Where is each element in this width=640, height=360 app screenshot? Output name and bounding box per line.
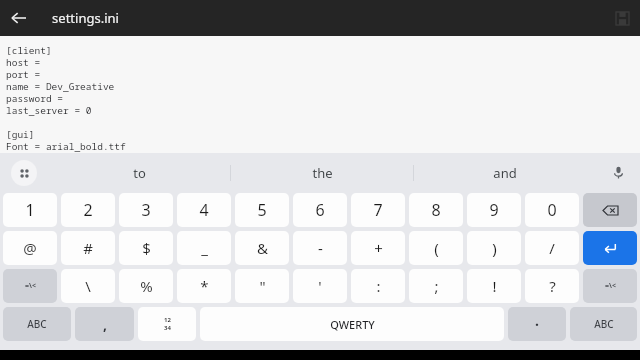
staticText: 6	[315, 199, 325, 221]
button[interactable]: 3	[119, 193, 173, 227]
button[interactable]: 8	[409, 193, 463, 227]
button[interactable]: QWERTY	[200, 307, 504, 341]
button[interactable]: "	[235, 269, 289, 303]
button[interactable]: ABC	[3, 307, 71, 341]
staticText: name = Dev_Greative	[6, 80, 115, 92]
button[interactable]: -	[293, 231, 347, 265]
staticText: 8	[431, 199, 441, 221]
button[interactable]: 5	[235, 193, 289, 227]
staticText: 1	[25, 199, 35, 221]
staticText: =\<	[25, 281, 36, 291]
button[interactable]: Save	[604, 0, 640, 36]
staticText: [client]	[6, 44, 52, 56]
staticText: %	[140, 276, 153, 296]
staticText: '	[318, 276, 322, 296]
staticText: (	[434, 238, 439, 258]
staticText: 12	[164, 316, 171, 324]
staticText: ;	[434, 276, 439, 296]
staticText: password =	[6, 92, 64, 104]
staticText: $	[142, 238, 151, 258]
staticText: ABC	[594, 317, 614, 331]
staticText: -	[318, 238, 323, 258]
staticText: &	[257, 238, 268, 258]
button[interactable]: @	[3, 231, 57, 265]
staticText: ,	[103, 315, 107, 334]
button[interactable]: ?	[525, 269, 579, 303]
button[interactable]: 9	[467, 193, 521, 227]
staticText: "	[259, 276, 266, 296]
button[interactable]: (	[409, 231, 463, 265]
staticText: 2	[83, 199, 93, 221]
staticText: \	[85, 276, 91, 296]
staticText: QWERTY	[330, 317, 375, 332]
staticText: :	[376, 276, 381, 296]
staticText: the	[312, 164, 333, 182]
button[interactable]: +	[351, 231, 405, 265]
button[interactable]: &	[235, 231, 289, 265]
button[interactable]: _	[177, 231, 231, 265]
button[interactable]: Numeric keyboard	[138, 307, 196, 341]
staticText: 34	[164, 324, 171, 332]
button[interactable]: the	[231, 153, 413, 192]
button[interactable]: ABC	[570, 307, 637, 341]
button[interactable]: )	[467, 231, 521, 265]
button[interactable]: =\<	[583, 269, 637, 303]
staticText: ·	[535, 315, 539, 334]
staticText: =\<	[605, 281, 616, 291]
staticText: /	[549, 238, 555, 258]
staticText: 9	[489, 199, 499, 221]
staticText: [gui]	[6, 128, 35, 140]
button[interactable]: Backspace	[583, 193, 637, 227]
staticText: 0	[547, 199, 557, 221]
button[interactable]: 4	[177, 193, 231, 227]
button[interactable]: 1	[3, 193, 57, 227]
button[interactable]: Keyboard options	[0, 153, 48, 192]
staticText: Font = arial_bold.ttf	[6, 140, 126, 152]
staticText: and	[493, 164, 517, 182]
button[interactable]: =\<	[3, 269, 57, 303]
staticText: last_server = 0	[6, 104, 92, 116]
button[interactable]: to	[48, 153, 230, 192]
staticText: 4	[199, 199, 209, 221]
button[interactable]: ·	[508, 307, 566, 341]
button[interactable]: !	[467, 269, 521, 303]
button[interactable]: 2	[61, 193, 115, 227]
staticText: to	[133, 164, 146, 182]
button[interactable]: ;	[409, 269, 463, 303]
staticText: _	[201, 238, 208, 258]
staticText: 5	[257, 199, 267, 221]
staticText: port =	[6, 68, 41, 80]
button[interactable]: *	[177, 269, 231, 303]
button[interactable]: 6	[293, 193, 347, 227]
button[interactable]: Back	[0, 0, 36, 36]
button[interactable]: #	[61, 231, 115, 265]
button[interactable]: '	[293, 269, 347, 303]
staticText: +	[374, 238, 383, 258]
staticText: !	[492, 276, 497, 296]
staticText: host =	[6, 56, 41, 68]
button[interactable]: :	[351, 269, 405, 303]
staticText: @	[23, 238, 37, 258]
staticText: ABC	[27, 317, 47, 331]
staticText: *	[200, 276, 209, 296]
staticText: 3	[141, 199, 151, 221]
button[interactable]: %	[119, 269, 173, 303]
staticText: settings.ini	[52, 9, 119, 27]
button[interactable]: Voice input	[596, 153, 640, 192]
button[interactable]: 7	[351, 193, 405, 227]
button[interactable]: ,	[75, 307, 134, 341]
button[interactable]: \	[61, 269, 115, 303]
button[interactable]: and	[414, 153, 596, 192]
staticText: 7	[373, 199, 383, 221]
staticText: #	[83, 238, 93, 258]
staticText: )	[492, 238, 497, 258]
button[interactable]: 0	[525, 193, 579, 227]
button[interactable]: /	[525, 231, 579, 265]
staticText: ?	[549, 276, 556, 296]
button[interactable]: Enter	[583, 231, 637, 265]
button[interactable]: $	[119, 231, 173, 265]
